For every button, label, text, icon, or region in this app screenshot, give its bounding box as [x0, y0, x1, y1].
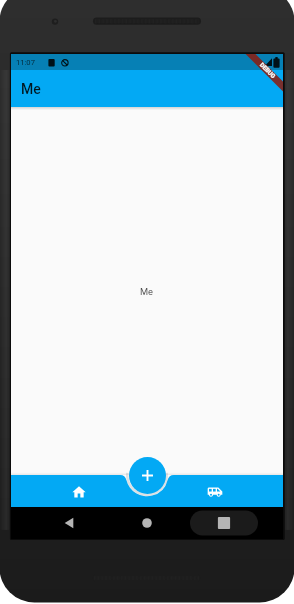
staticText: DEBUG [258, 62, 277, 80]
button[interactable]: Shuttle [199, 475, 231, 507]
staticText: Me [21, 81, 41, 97]
button[interactable]: Back [53, 507, 85, 539]
button[interactable]: Home [63, 475, 95, 507]
button[interactable]: Home [131, 507, 163, 539]
staticText: Me [140, 286, 154, 297]
button[interactable]: Add [129, 457, 166, 494]
button[interactable]: Recent apps [208, 507, 240, 539]
staticText: 11:07 [16, 58, 35, 67]
